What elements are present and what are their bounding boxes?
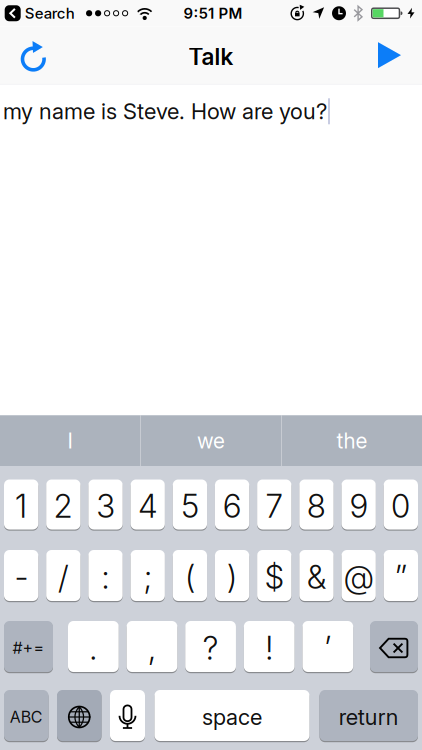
staticText: ”: [394, 558, 407, 596]
button[interactable]: Dictate: [110, 690, 145, 741]
button[interactable]: I: [0, 415, 140, 466]
button[interactable]: Delete: [370, 621, 418, 672]
staticText: Search: [25, 4, 75, 22]
button[interactable]: ”: [384, 550, 418, 601]
button[interactable]: -: [4, 550, 38, 601]
staticText: ,: [147, 629, 156, 667]
button[interactable]: 6: [215, 479, 249, 529]
staticText: -: [14, 558, 28, 596]
button[interactable]: $: [257, 550, 291, 601]
button[interactable]: 4: [131, 479, 165, 529]
button[interactable]: 0: [384, 479, 418, 529]
button[interactable]: 2: [46, 479, 80, 529]
button[interactable]: ;: [131, 550, 165, 601]
button[interactable]: :: [88, 550, 123, 601]
staticText: 4: [138, 487, 158, 525]
staticText: return: [339, 704, 399, 730]
button[interactable]: 1: [4, 479, 38, 529]
button[interactable]: Speak: [378, 42, 422, 68]
staticText: (: [184, 558, 195, 596]
button[interactable]: Refresh: [0, 40, 47, 70]
staticText: $: [264, 558, 284, 596]
staticText: 3: [96, 487, 115, 525]
staticText: ?: [203, 629, 219, 667]
staticText: Talk: [188, 43, 233, 70]
button[interactable]: &: [299, 550, 334, 601]
staticText: 5: [180, 487, 199, 525]
staticText: I: [67, 428, 72, 453]
staticText: !: [265, 629, 274, 667]
staticText: &: [306, 558, 326, 596]
button[interactable]: ?: [185, 621, 236, 672]
staticText: the: [336, 428, 367, 453]
button[interactable]: space: [154, 690, 309, 741]
staticText: 9: [349, 487, 368, 525]
button[interactable]: 3: [88, 479, 123, 529]
staticText: 2: [53, 487, 73, 525]
button[interactable]: Back to Search: [0, 4, 75, 22]
staticText: 9:51 PM: [183, 4, 243, 22]
button[interactable]: .: [68, 621, 119, 672]
staticText: /: [58, 558, 69, 596]
button[interactable]: /: [46, 550, 80, 601]
staticText: ): [227, 558, 238, 596]
staticText: space: [202, 704, 262, 730]
button[interactable]: ’: [302, 621, 353, 672]
staticText: ABC: [10, 708, 43, 726]
button[interactable]: !: [244, 621, 295, 672]
staticText: @: [343, 558, 374, 596]
staticText: ;: [143, 558, 152, 596]
button[interactable]: 9: [341, 479, 376, 529]
button[interactable]: the: [282, 415, 422, 466]
button[interactable]: 7: [257, 479, 291, 529]
staticText: 1: [15, 487, 28, 525]
button[interactable]: @: [341, 550, 376, 601]
button[interactable]: (: [173, 550, 207, 601]
button[interactable]: 5: [173, 479, 207, 529]
staticText: 0: [391, 487, 411, 525]
staticText: #+=: [12, 639, 44, 657]
staticText: 7: [265, 487, 283, 525]
button[interactable]: ABC: [4, 690, 48, 741]
button[interactable]: #+=: [4, 621, 53, 672]
button[interactable]: we: [141, 415, 281, 466]
staticText: my name is Steve. How are you?: [3, 98, 327, 124]
staticText: :: [101, 558, 110, 596]
staticText: 8: [306, 487, 326, 525]
button[interactable]: 8: [299, 479, 334, 529]
button[interactable]: ,: [127, 621, 177, 672]
button[interactable]: ): [215, 550, 249, 601]
staticText: 6: [223, 487, 242, 525]
button[interactable]: return: [319, 690, 418, 741]
staticText: .: [89, 629, 98, 667]
button[interactable]: Next keyboard: [57, 690, 101, 741]
staticText: we: [197, 428, 225, 453]
staticText: ’: [324, 629, 332, 667]
